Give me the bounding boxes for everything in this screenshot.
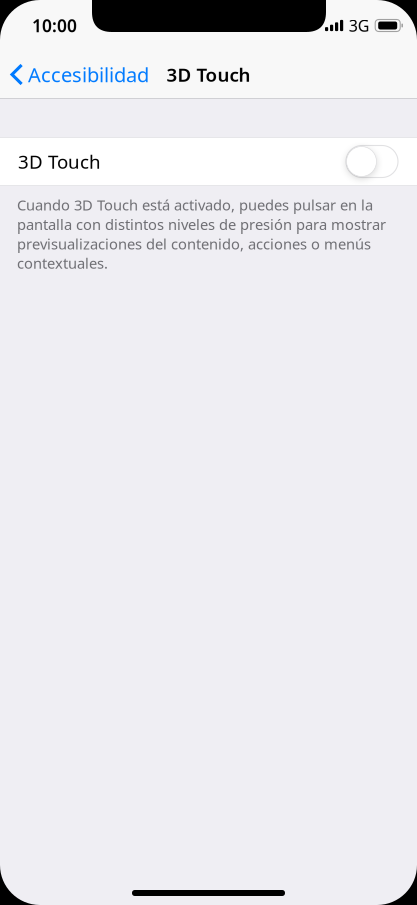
staticText: 3G — [349, 15, 370, 36]
button[interactable]: 3D Touch — [0, 137, 417, 186]
staticText: Cuando 3D Touch está activado, puedes pu… — [17, 195, 386, 273]
staticText: 10:00 — [32, 14, 77, 37]
staticText: 3D Touch — [166, 62, 250, 87]
staticText: Accesibilidad — [28, 61, 149, 88]
staticText: 3D Touch — [18, 149, 101, 174]
button[interactable]: Accesibilidad — [0, 55, 157, 94]
